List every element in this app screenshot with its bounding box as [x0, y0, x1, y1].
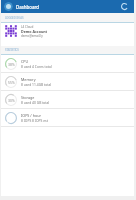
button[interactable]: Refresh — [119, 1, 130, 12]
staticText: 38% — [8, 62, 15, 67]
staticText: Memory — [21, 77, 36, 82]
button[interactable]: 55% — [1, 73, 134, 91]
staticText: Demo Account — [21, 29, 48, 34]
staticText: IOPS / hour — [21, 113, 41, 118]
staticText: 55% — [8, 80, 15, 85]
staticText: 8 used 11.4GB total — [21, 82, 52, 86]
staticText: 8 used 4 Cores total — [21, 64, 52, 68]
staticText: 8 used 40 GB total — [21, 100, 50, 104]
staticText: CPU — [21, 59, 29, 64]
staticText: Storage — [21, 95, 35, 100]
staticText: LOGGED IN AS — [5, 16, 24, 20]
staticText: 8 IOPS 8 IOPS est — [21, 118, 48, 122]
staticText: L4 Cloud — [21, 25, 34, 29]
staticText: demo@email.ly — [21, 34, 43, 38]
button[interactable]: 38% — [1, 55, 134, 73]
button[interactable]: L4 Cloud — [1, 23, 134, 46]
button[interactable]: Menu — [4, 2, 13, 11]
button[interactable]: 30% — [1, 91, 134, 109]
staticText: STATISTICS — [5, 48, 19, 52]
staticText: Dashboard — [16, 4, 40, 10]
button[interactable]: IOPS / hour — [1, 109, 134, 127]
staticText: 30% — [8, 98, 15, 103]
